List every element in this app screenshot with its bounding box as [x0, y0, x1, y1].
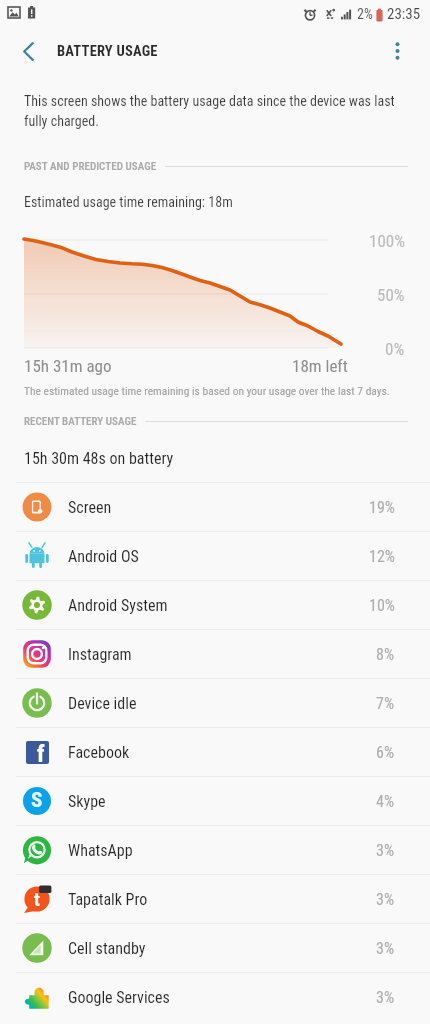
staticText: 12%	[369, 547, 395, 566]
button[interactable]: WhatsApp	[0, 826, 430, 874]
staticText: 10%	[369, 596, 395, 615]
staticText: 3%	[376, 939, 395, 958]
staticText: f	[37, 741, 45, 764]
staticText: 4%	[376, 792, 395, 811]
staticText: The estimated usage time remaining is ba…	[24, 384, 390, 397]
staticText: Instagram	[68, 645, 132, 664]
staticText: Tapatalk Pro	[68, 890, 148, 909]
staticText: Facebook	[68, 743, 130, 762]
staticText: t	[34, 888, 40, 910]
staticText: 3%	[376, 890, 395, 909]
staticText: S	[31, 788, 43, 813]
staticText: 15h 31m ago	[24, 356, 112, 376]
staticText: 19%	[369, 498, 395, 517]
staticText: Skype	[68, 792, 106, 811]
staticText: 6%	[376, 743, 395, 762]
staticText: Screen	[68, 498, 112, 517]
staticText: Android System	[68, 596, 168, 615]
staticText: Cell standby	[68, 939, 146, 958]
staticText: 15h 30m 48s on battery	[24, 449, 174, 468]
staticText: 18m left	[292, 356, 348, 376]
staticText: WhatsApp	[68, 841, 133, 860]
button[interactable]: More options	[364, 28, 430, 74]
button[interactable]: Screen	[0, 483, 430, 531]
staticText: BATTERY USAGE	[57, 43, 158, 60]
button[interactable]: Android OS	[0, 532, 430, 580]
staticText: 7%	[376, 694, 395, 713]
staticText: Android OS	[68, 547, 139, 566]
button[interactable]: Cell standby	[0, 924, 430, 972]
button[interactable]: Device idle	[0, 679, 430, 727]
button[interactable]: Instagram	[0, 630, 430, 678]
staticText: PAST AND PREDICTED USAGE	[24, 160, 157, 173]
staticText: 50%	[377, 285, 405, 305]
staticText: 0%	[385, 339, 405, 356]
button[interactable]: Android System	[0, 581, 430, 629]
staticText: 8%	[376, 645, 395, 664]
staticText: 3%	[376, 841, 395, 860]
staticText: RECENT BATTERY USAGE	[24, 415, 137, 428]
staticText: 2%	[357, 6, 373, 22]
staticText: This screen shows the battery usage data…	[24, 93, 410, 129]
staticText: Google Services	[68, 988, 170, 1007]
staticText: 3%	[376, 988, 395, 1007]
staticText: Estimated usage time remaining: 18m	[24, 194, 233, 210]
button[interactable]: f	[0, 728, 430, 776]
button[interactable]: Navigate up	[0, 28, 57, 74]
staticText: 100%	[369, 231, 405, 251]
staticText: 23:35	[387, 5, 421, 23]
button[interactable]: Google Services	[0, 973, 430, 1021]
button[interactable]: S	[0, 777, 430, 825]
button[interactable]: t	[0, 875, 430, 923]
staticText: Device idle	[68, 694, 137, 713]
